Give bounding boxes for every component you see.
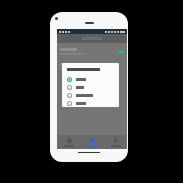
button[interactable] xyxy=(67,99,115,107)
button[interactable]: Screen lock xyxy=(81,135,104,149)
button[interactable] xyxy=(60,61,127,72)
button[interactable] xyxy=(67,75,115,83)
button[interactable]: Home xyxy=(57,135,81,149)
button[interactable] xyxy=(67,91,115,99)
button[interactable]: Toggle screen lock xyxy=(60,46,127,57)
button[interactable] xyxy=(67,83,115,91)
button[interactable]: Settings xyxy=(104,135,127,149)
button[interactable]: Toggle screen lock xyxy=(118,50,124,54)
